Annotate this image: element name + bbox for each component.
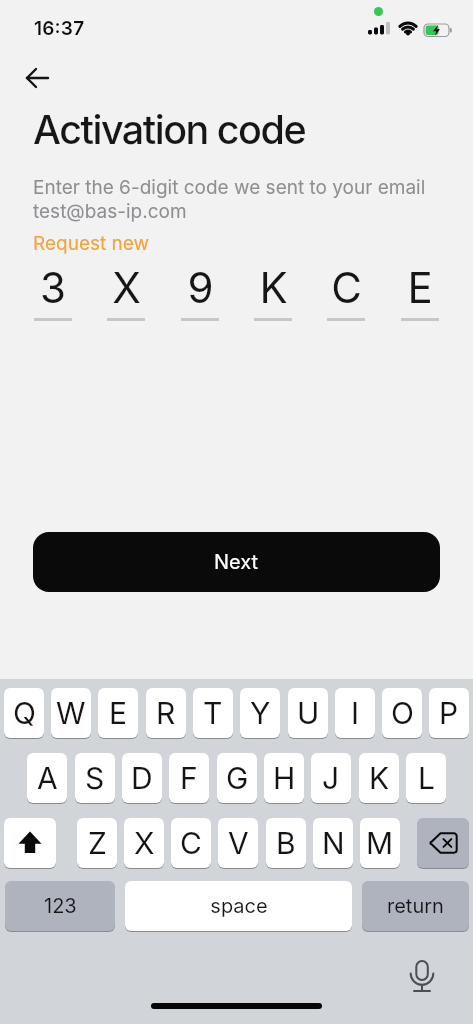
button[interactable]: S [75,753,115,803]
staticText: Activation code [33,106,306,154]
button[interactable]: P [429,688,469,738]
staticText: F [180,760,198,796]
staticText: Enter the 6-digit code we sent to your e… [33,176,426,223]
staticText: P [439,695,459,731]
staticText: return [387,894,444,918]
staticText: O [391,695,414,731]
button[interactable]: L [406,753,446,803]
button[interactable]: K [359,753,399,803]
staticText: I [351,695,360,731]
button[interactable]: T [193,688,233,738]
staticText: 16:37 [34,17,85,40]
button[interactable]: Y [240,688,280,738]
staticText: V [228,825,249,861]
button[interactable]: G [217,753,257,803]
button[interactable]: U [288,688,328,738]
button[interactable]: M [360,818,400,868]
staticText: W [56,695,86,731]
staticText: space [210,894,268,918]
staticText: L [418,760,435,796]
button[interactable]: B [266,818,306,868]
button[interactable]: V [218,818,258,868]
button[interactable]: J [311,753,351,803]
button[interactable]: Next [33,532,440,592]
staticText: K [259,262,288,310]
button[interactable]: 123 [5,881,115,931]
button[interactable]: X [124,818,164,868]
staticText: 9 [187,262,214,310]
button[interactable]: R [146,688,186,738]
button[interactable] [4,818,56,868]
staticText: Request new [33,232,150,255]
button[interactable] [417,818,469,868]
button[interactable]: Request new [33,232,150,255]
button[interactable]: D [122,753,162,803]
staticText: Q [13,695,36,731]
button[interactable]: E [98,688,138,738]
staticText: R [156,695,176,731]
staticText: X [134,825,155,861]
staticText: E [407,262,433,310]
staticText: A [37,760,58,796]
button[interactable] [125,881,352,931]
button[interactable] [20,60,56,96]
button[interactable]: N [313,818,353,868]
staticText: N [322,825,345,861]
staticText: D [131,760,153,796]
staticText: U [297,695,320,731]
staticText: Y [250,695,271,731]
staticText: H [273,760,296,796]
staticText: B [276,825,296,861]
button[interactable]: O [382,688,422,738]
staticText: X [112,262,141,310]
button[interactable]: A [27,753,67,803]
staticText: S [85,760,105,796]
staticText: Z [88,825,107,861]
staticText: K [369,760,390,796]
staticText: 3 [40,262,66,310]
button[interactable]: F [169,753,209,803]
button[interactable]: Z [77,818,117,868]
button[interactable]: Q [4,688,44,738]
staticText: M [366,825,394,861]
staticText: E [109,695,128,731]
staticText: G [226,760,249,796]
button[interactable]: I [335,688,375,738]
staticText: T [203,695,223,731]
button[interactable]: W [51,688,91,738]
button[interactable]: return [362,881,469,931]
staticText: 123 [44,894,77,918]
staticText: C [331,262,362,310]
button[interactable]: H [264,753,304,803]
staticText: C [180,825,202,861]
staticText: J [322,760,340,796]
button[interactable]: C [171,818,211,868]
staticText: Next [214,550,259,574]
